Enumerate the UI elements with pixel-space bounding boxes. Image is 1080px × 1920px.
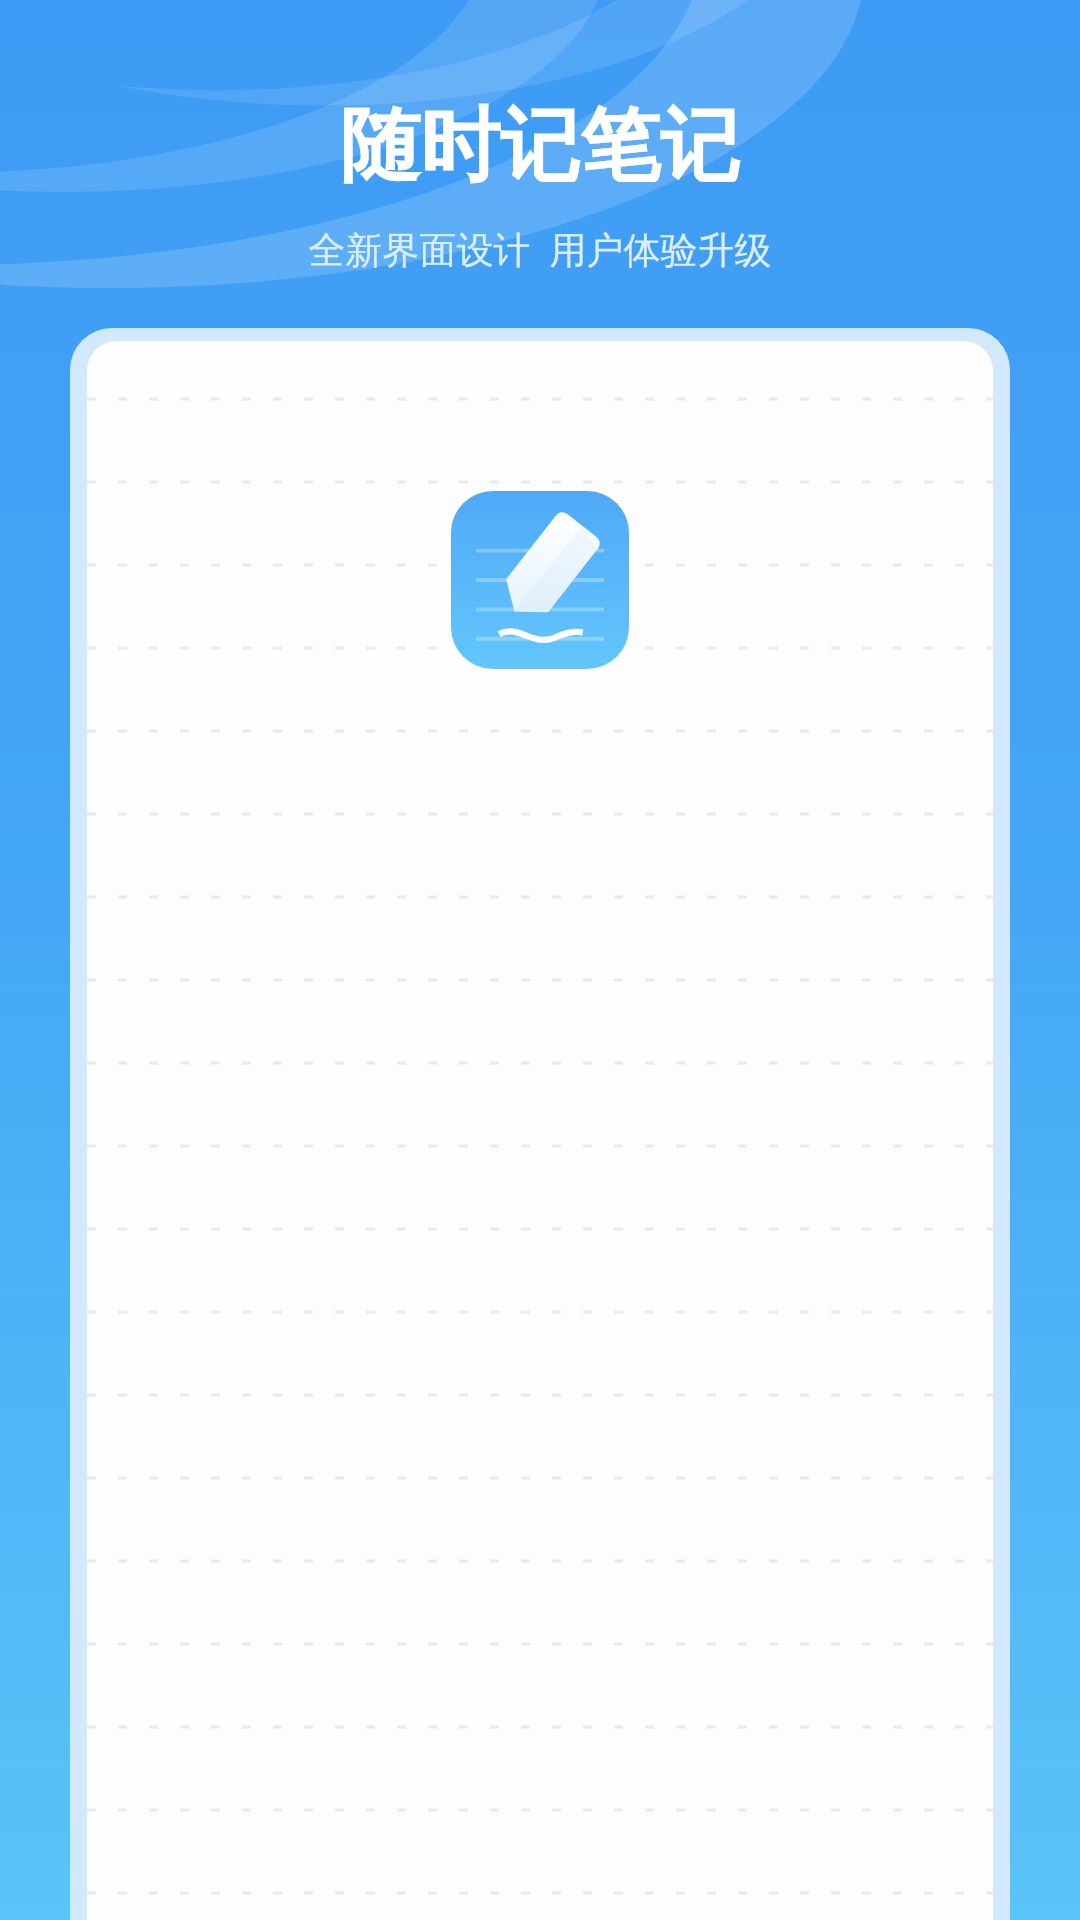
staticText: 全新界面设计 用户体验升级 — [308, 223, 772, 274]
staticText: 随时记笔记 — [340, 96, 740, 197]
button[interactable]: Note app icon — [87, 341, 993, 1920]
button[interactable]: Note app icon — [451, 491, 629, 669]
